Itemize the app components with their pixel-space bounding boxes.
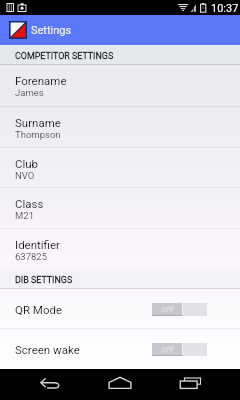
- staticText: COMPETITOR SETTINGS: [15, 51, 114, 61]
- button[interactable]: Screen wake: [0, 329, 240, 369]
- staticText: Club: [15, 157, 39, 170]
- staticText: OFF: [162, 346, 174, 354]
- button[interactable]: Recent apps: [160, 369, 240, 400]
- button[interactable]: Back: [0, 369, 80, 400]
- staticText: Screen wake: [15, 343, 80, 356]
- button[interactable]: Home: [80, 369, 160, 400]
- staticText: DIB SETTINGS: [15, 275, 73, 285]
- button[interactable]: Forename: [0, 65, 240, 107]
- staticText: 10:37: [211, 2, 239, 15]
- button[interactable]: Surname: [0, 107, 240, 148]
- staticText: Forename: [15, 74, 67, 87]
- staticText: Class: [15, 197, 44, 210]
- staticText: James: [15, 87, 44, 98]
- staticText: Thompson: [15, 129, 61, 140]
- staticText: Identifier: [15, 238, 60, 251]
- button[interactable]: QR Mode: [0, 289, 240, 329]
- button[interactable]: Class: [0, 188, 240, 229]
- staticText: Surname: [15, 116, 61, 129]
- staticText: QR Mode: [15, 303, 63, 316]
- button[interactable]: Identifier: [0, 229, 240, 269]
- staticText: OFF: [162, 306, 174, 314]
- staticText: 637825: [15, 251, 48, 262]
- button[interactable]: Club: [0, 148, 240, 188]
- staticText: Settings: [31, 24, 72, 37]
- staticText: NVO: [15, 170, 35, 181]
- staticText: M21: [15, 210, 34, 221]
